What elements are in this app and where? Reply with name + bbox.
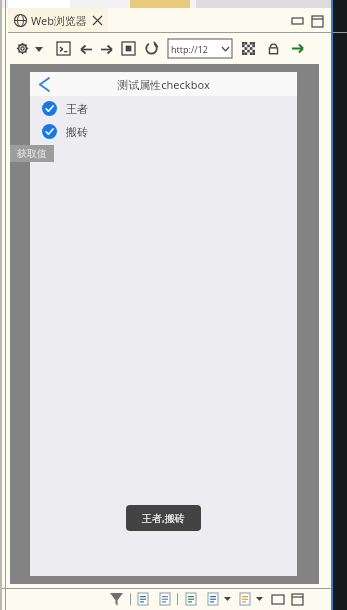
staticText: 测试属性checkbox (117, 77, 210, 92)
button[interactable]: QR code (240, 40, 257, 57)
button[interactable]: Minimize (291, 16, 303, 26)
button[interactable]: View (184, 592, 198, 606)
button[interactable]: More (222, 594, 232, 604)
button[interactable]: Restore (272, 595, 284, 604)
button[interactable]: View (238, 592, 252, 606)
button[interactable]: Back (30, 72, 58, 96)
button[interactable]: View (136, 592, 150, 606)
button[interactable]: 王者 (42, 101, 297, 116)
button[interactable]: Maximize panel (292, 594, 303, 605)
staticText: Web浏览器 (31, 13, 87, 28)
button[interactable]: http://12 (168, 39, 232, 58)
button[interactable]: Menu (33, 43, 45, 55)
button[interactable]: Back (78, 41, 94, 57)
button[interactable]: Go (290, 41, 305, 56)
button[interactable]: Settings (14, 40, 31, 57)
button[interactable]: Web浏览器 (14, 8, 102, 33)
button[interactable]: View (206, 592, 220, 606)
staticText: 王者 (66, 102, 88, 116)
button[interactable]: 获取值 (17, 145, 47, 162)
button[interactable]: 搬砖 (42, 124, 297, 139)
button[interactable]: Refresh (143, 40, 160, 57)
staticText: http://12 (171, 43, 208, 55)
button[interactable]: Stop (120, 40, 137, 57)
button[interactable]: More (254, 594, 264, 604)
staticText: 获取值 (17, 147, 47, 160)
button[interactable]: Filter (108, 591, 125, 608)
staticText: 王者,搬砖 (142, 511, 185, 525)
button[interactable]: Forward (98, 41, 114, 57)
button[interactable]: Console (55, 40, 72, 57)
button[interactable]: View (158, 592, 172, 606)
button[interactable]: Lock (265, 40, 282, 57)
staticText: 搬砖 (66, 125, 88, 139)
button[interactable]: Maximize (311, 15, 323, 27)
other: Close tab (93, 16, 102, 25)
